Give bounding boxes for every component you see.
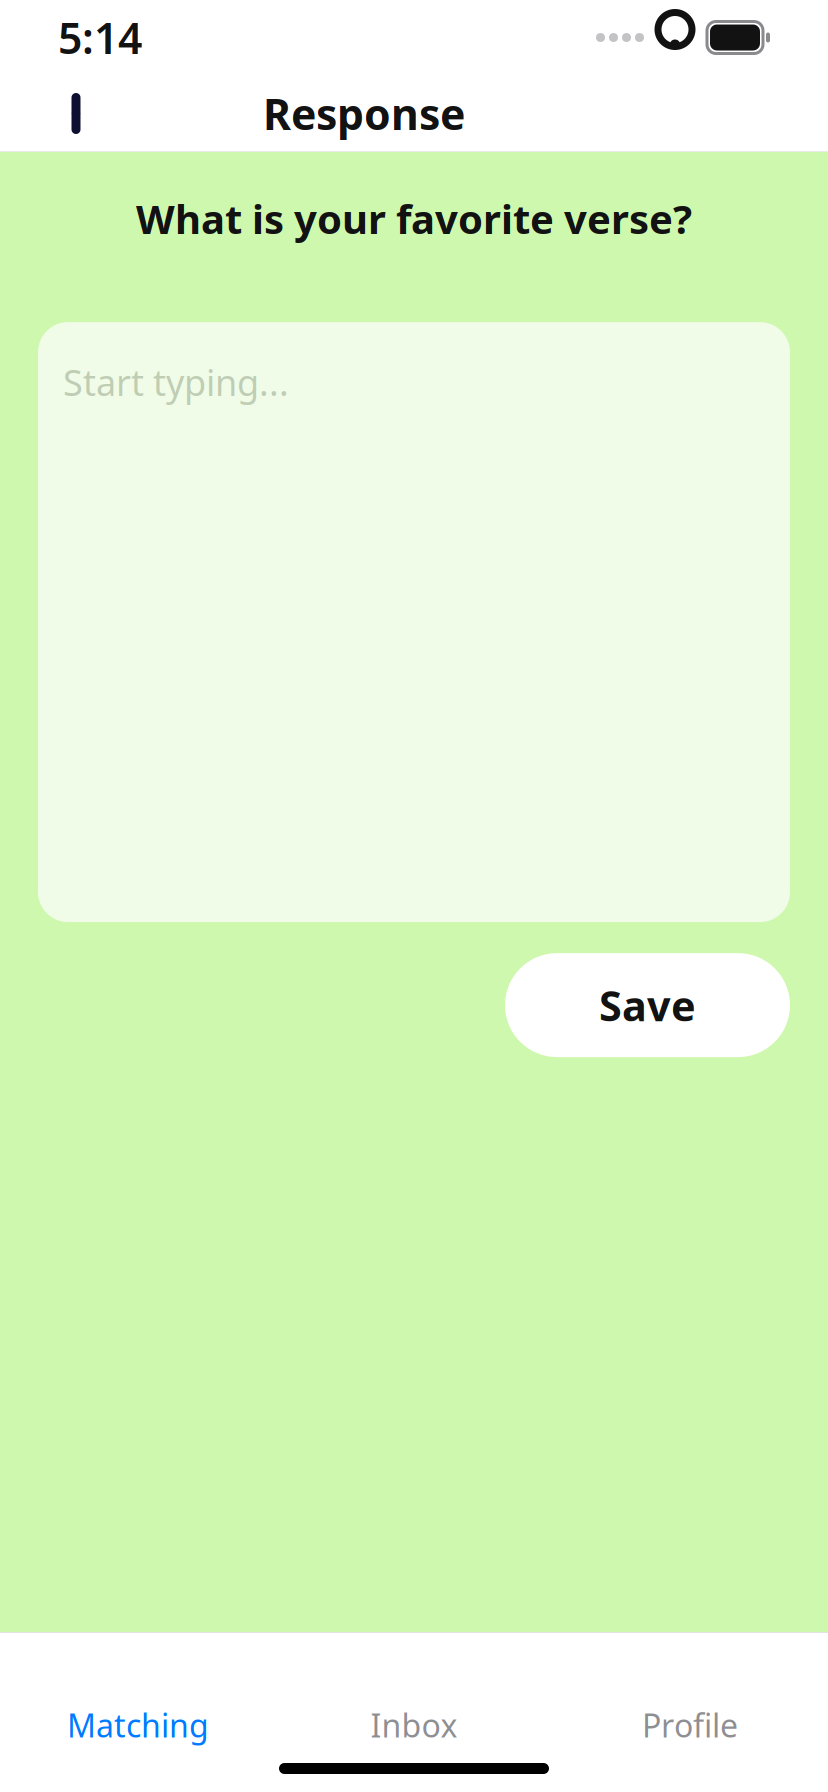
staticText: Start typing... [63,358,289,406]
staticText: Inbox [370,1704,457,1746]
button[interactable]: Inbox [276,1705,552,1745]
staticText: Response [263,85,465,142]
staticText: Save [599,978,696,1033]
staticText: Profile [642,1704,738,1746]
button[interactable]: Profile [552,1705,828,1745]
staticText: What is your favorite verse? [136,192,692,245]
button[interactable]: Start typing... [38,322,790,922]
button[interactable]: Save [505,953,790,1057]
button[interactable]: Back [40,75,120,152]
staticText: Matching [67,1704,209,1746]
staticText: 5:14 [58,9,142,66]
button[interactable]: Matching [0,1705,276,1745]
